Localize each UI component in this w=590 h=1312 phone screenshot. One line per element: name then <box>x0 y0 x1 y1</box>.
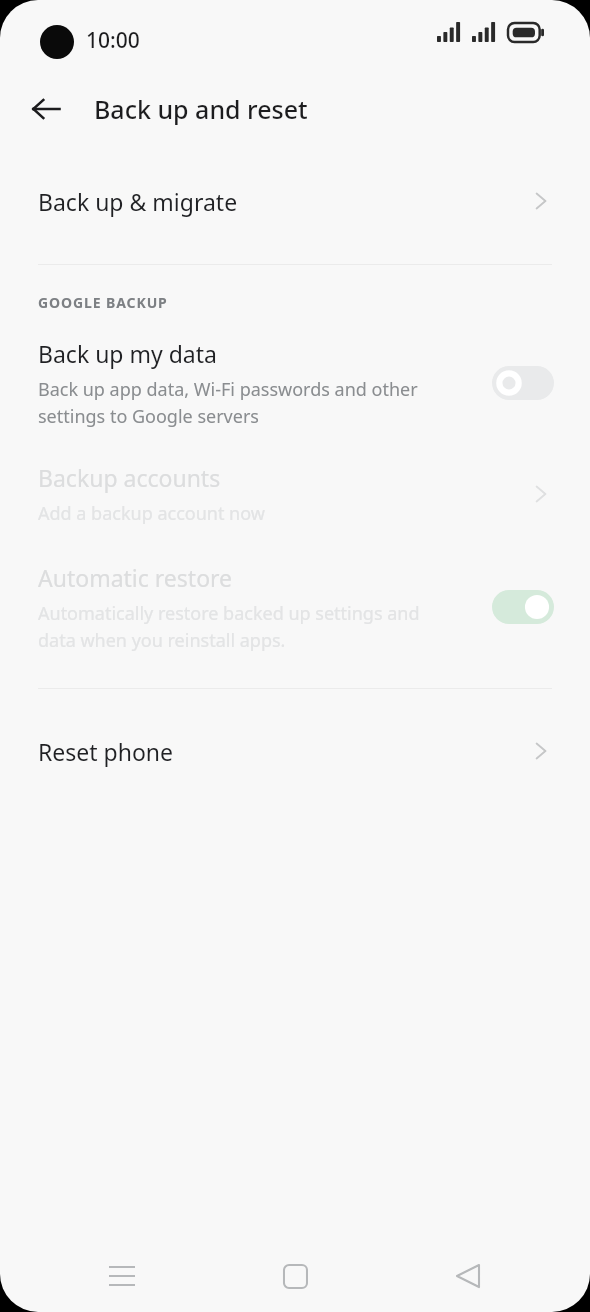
button[interactable]: On <box>492 590 554 624</box>
other: Open <box>526 186 556 216</box>
button[interactable]: Automatic restore <box>0 562 590 652</box>
staticText: Back up & migrate <box>38 186 526 217</box>
button[interactable]: Back <box>436 1244 500 1308</box>
staticText: Automatically restore backed up settings… <box>38 601 420 652</box>
button[interactable]: Back up my data <box>0 338 590 428</box>
staticText: 10:00 <box>86 26 140 55</box>
button[interactable]: Home <box>263 1244 327 1308</box>
button[interactable]: Off <box>492 366 554 400</box>
button[interactable]: Reset phone <box>0 721 590 781</box>
button[interactable]: Back <box>20 83 72 135</box>
staticText: Automatic restore <box>38 562 233 593</box>
staticText: Reset phone <box>38 736 526 767</box>
button[interactable]: Recent apps <box>90 1244 154 1308</box>
staticText: Backup accounts <box>38 462 221 493</box>
staticText: Back up app data, Wi-Fi passwords and ot… <box>38 377 418 428</box>
staticText: Add a backup account now <box>38 501 265 526</box>
other: Open <box>526 479 556 509</box>
staticText: GOOGLE BACKUP <box>38 293 168 312</box>
other: Open <box>526 736 556 766</box>
button[interactable]: Back up & migrate <box>0 168 590 234</box>
button[interactable]: Backup accounts <box>0 462 590 526</box>
staticText: Back up and reset <box>94 92 308 126</box>
staticText: Back up my data <box>38 338 217 369</box>
